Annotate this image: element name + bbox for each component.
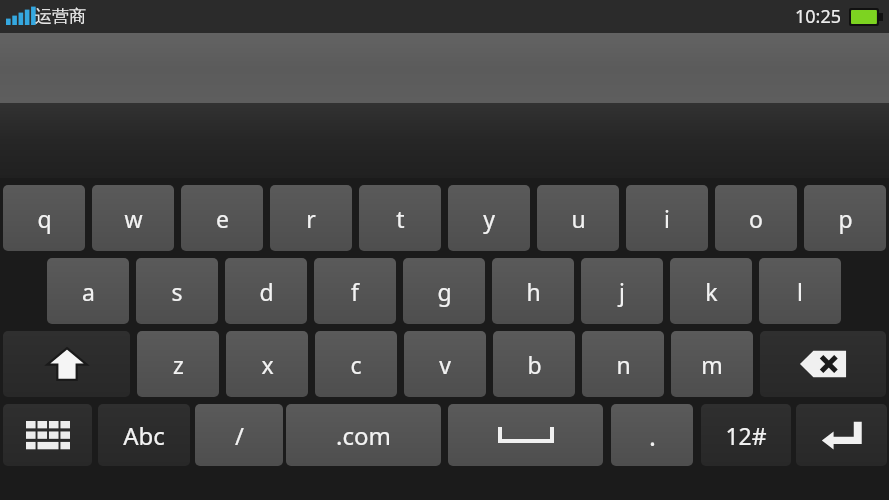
staticText: c <box>350 349 362 380</box>
staticText: v <box>439 349 451 380</box>
staticText: .com <box>336 419 391 452</box>
button[interactable]: j <box>581 258 663 324</box>
staticText: 10:25 <box>795 4 842 29</box>
staticText: p <box>838 203 853 234</box>
button[interactable]: Switch keyboard <box>3 404 92 466</box>
button[interactable]: Shift <box>3 331 130 397</box>
button[interactable]: Backspace <box>760 331 886 397</box>
button[interactable]: l <box>759 258 841 324</box>
staticText: j <box>619 276 625 307</box>
staticText: r <box>306 203 316 234</box>
button[interactable]: . <box>611 404 693 466</box>
staticText: y <box>483 203 495 234</box>
button[interactable]: u <box>537 185 619 251</box>
button[interactable]: z <box>137 331 219 397</box>
staticText: d <box>259 276 274 307</box>
button[interactable]: n <box>582 331 664 397</box>
button[interactable]: y <box>448 185 530 251</box>
button[interactable]: Abc <box>98 404 190 466</box>
staticText: w <box>124 203 143 234</box>
button[interactable]: s <box>136 258 218 324</box>
button[interactable]: / <box>195 404 283 466</box>
button[interactable]: r <box>270 185 352 251</box>
button[interactable]: Space <box>448 404 603 466</box>
staticText: Abc <box>123 419 165 452</box>
staticText: g <box>437 276 452 307</box>
button[interactable]: v <box>404 331 486 397</box>
button[interactable]: o <box>715 185 797 251</box>
staticText: z <box>173 349 184 380</box>
button[interactable]: b <box>493 331 575 397</box>
button[interactable]: t <box>359 185 441 251</box>
staticText: 12# <box>725 420 767 451</box>
staticText: f <box>351 276 359 307</box>
button[interactable]: x <box>226 331 308 397</box>
button[interactable]: 12# <box>701 404 791 466</box>
staticText: / <box>235 419 244 452</box>
staticText: u <box>571 203 586 234</box>
button[interactable]: k <box>670 258 752 324</box>
staticText: m <box>701 349 723 380</box>
staticText: b <box>527 349 542 380</box>
button[interactable]: g <box>403 258 485 324</box>
staticText: t <box>396 203 405 234</box>
button[interactable]: c <box>315 331 397 397</box>
button[interactable]: w <box>92 185 174 251</box>
staticText: o <box>749 203 763 234</box>
staticText: i <box>664 203 670 234</box>
staticText: n <box>616 349 631 380</box>
button[interactable]: p <box>804 185 886 251</box>
staticText: a <box>82 276 95 307</box>
staticText: s <box>171 276 183 307</box>
staticText: l <box>797 276 803 307</box>
button[interactable]: f <box>314 258 396 324</box>
button[interactable]: q <box>3 185 85 251</box>
button[interactable]: d <box>225 258 307 324</box>
button[interactable]: e <box>181 185 263 251</box>
staticText: h <box>526 276 541 307</box>
staticText: e <box>216 203 229 234</box>
staticText: x <box>261 349 274 380</box>
staticText: q <box>37 203 52 234</box>
staticText: . <box>649 418 656 453</box>
button[interactable]: h <box>492 258 574 324</box>
button[interactable]: Enter <box>796 404 887 466</box>
staticText: 运营商 <box>35 6 86 27</box>
button[interactable]: i <box>626 185 708 251</box>
button[interactable]: a <box>47 258 129 324</box>
button[interactable]: .com <box>286 404 441 466</box>
button[interactable]: m <box>671 331 753 397</box>
staticText: k <box>705 276 718 307</box>
